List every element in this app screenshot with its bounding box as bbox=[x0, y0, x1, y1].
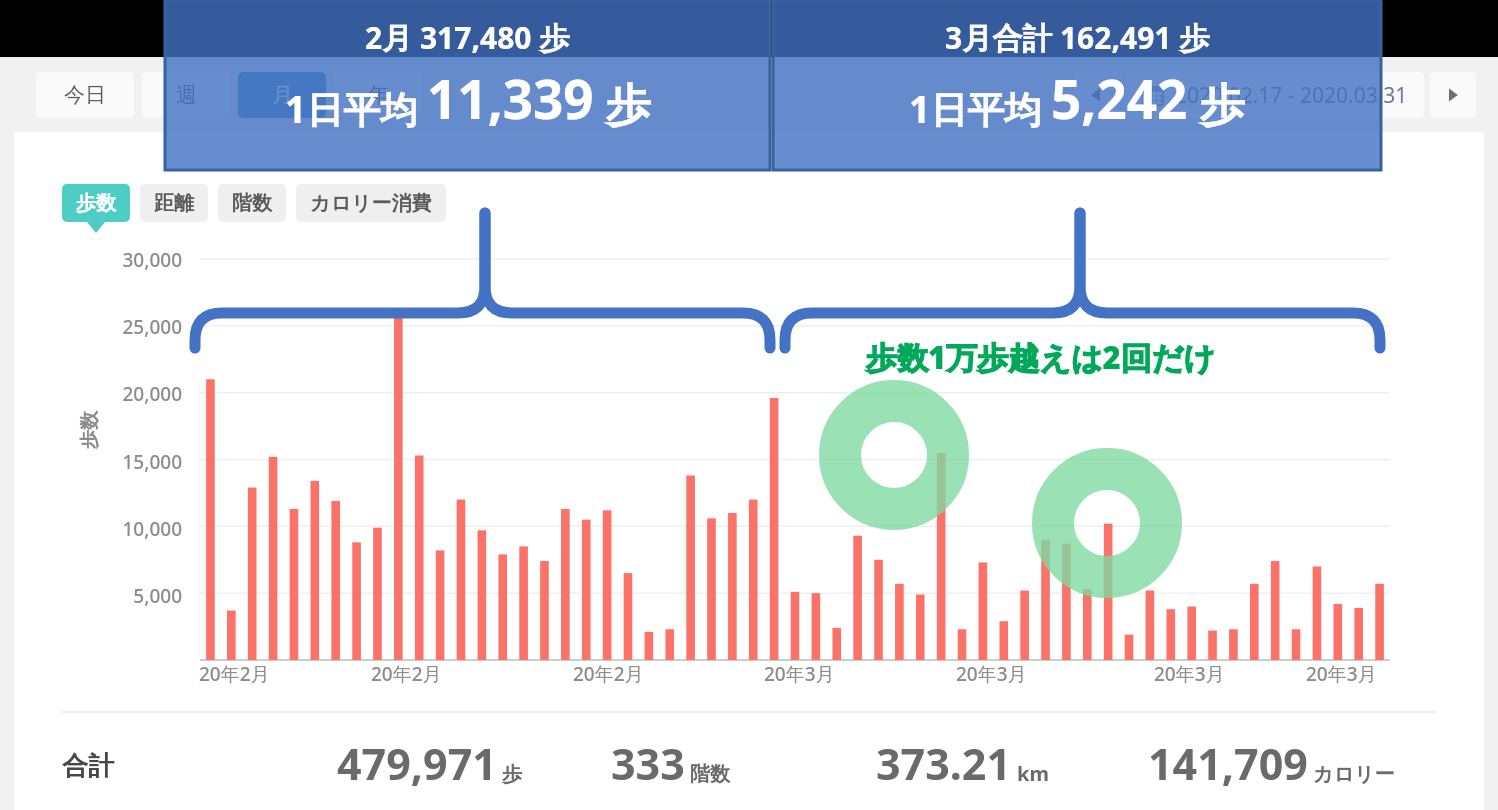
staticText: 20年3月 bbox=[764, 661, 835, 687]
staticText: カロリー bbox=[1313, 762, 1395, 787]
button[interactable]: 2020.02.17 - 2020.03.31 bbox=[1125, 72, 1424, 118]
staticText: 373.21 bbox=[876, 734, 1012, 793]
staticText: 月 bbox=[272, 82, 293, 108]
staticText: 1日平均 bbox=[285, 83, 427, 134]
staticText: カロリー消費 bbox=[310, 191, 432, 216]
staticText: 10,000 bbox=[100, 516, 182, 542]
button[interactable]: 週 bbox=[142, 72, 230, 118]
button[interactable]: 月 bbox=[238, 72, 326, 118]
staticText: 合計 bbox=[62, 750, 114, 783]
staticText: 3月合計 162,491 歩 bbox=[945, 17, 1210, 58]
staticText: 20年2月 bbox=[573, 661, 644, 687]
staticText: 2月 317,480 歩 bbox=[365, 17, 570, 58]
staticText: 階数 bbox=[232, 191, 272, 216]
staticText: km bbox=[1017, 760, 1049, 787]
staticText: 1日平均 bbox=[909, 83, 1051, 134]
button[interactable]: 今日 bbox=[36, 72, 134, 118]
staticText: 年 bbox=[368, 82, 389, 108]
button[interactable]: 歩数 bbox=[62, 184, 130, 222]
staticText: 2020.02.17 - 2020.03.31 bbox=[1175, 81, 1408, 110]
button[interactable]: カロリー消費 bbox=[296, 184, 446, 222]
button[interactable]: 階数 bbox=[218, 184, 286, 222]
button[interactable]: 年 bbox=[334, 72, 422, 118]
staticText: 5,000 bbox=[100, 583, 182, 609]
staticText: 週 bbox=[176, 82, 197, 108]
staticText: 距離 bbox=[154, 191, 194, 216]
staticText: 歩 bbox=[1188, 73, 1245, 134]
staticText: 歩数1万歩越えは2回だけ bbox=[866, 336, 1216, 378]
staticText: 今日 bbox=[64, 82, 106, 108]
staticText: 20年2月 bbox=[199, 661, 270, 687]
staticText: 25,000 bbox=[100, 314, 182, 340]
staticText: 歩数 bbox=[76, 191, 116, 216]
staticText: 20年3月 bbox=[1306, 661, 1377, 687]
staticText: 15,000 bbox=[100, 449, 182, 475]
staticText: 歩 bbox=[502, 762, 522, 787]
staticText: 歩 bbox=[594, 73, 651, 134]
staticText: 20年2月 bbox=[371, 661, 442, 687]
button[interactable]: 距離 bbox=[140, 184, 208, 222]
staticText: 333 bbox=[611, 734, 685, 793]
button[interactable]: Next period bbox=[1430, 72, 1476, 118]
staticText: 20,000 bbox=[100, 381, 182, 407]
staticText: 20年3月 bbox=[1154, 661, 1225, 687]
button[interactable]: Previous period bbox=[1073, 72, 1119, 118]
staticText: 141,709 bbox=[1148, 734, 1308, 793]
staticText: 歩数 bbox=[77, 411, 101, 449]
staticText: 20年3月 bbox=[956, 661, 1027, 687]
staticText: 11,339 bbox=[427, 62, 594, 134]
staticText: 5,242 bbox=[1051, 62, 1188, 134]
staticText: 479,971 bbox=[337, 734, 497, 793]
staticText: 階数 bbox=[690, 762, 730, 787]
staticText: 30,000 bbox=[100, 247, 182, 273]
